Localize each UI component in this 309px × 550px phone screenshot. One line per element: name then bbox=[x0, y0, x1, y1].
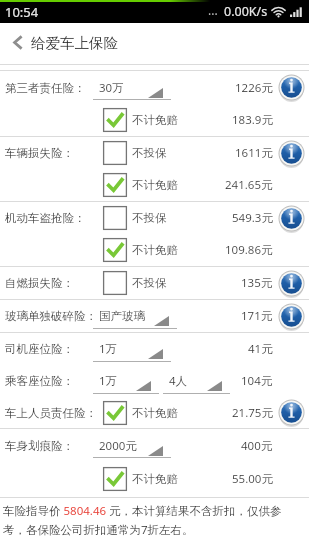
staticText: 30万 bbox=[99, 80, 124, 96]
staticText: 机动车盗抢险： bbox=[5, 211, 86, 225]
button[interactable]: 30万 bbox=[93, 71, 171, 104]
staticText: 司机座位险： bbox=[5, 342, 74, 356]
button[interactable]: Info bbox=[278, 140, 305, 167]
button[interactable]: 1万 bbox=[93, 333, 171, 365]
staticText: 给爱车上保险 bbox=[31, 34, 118, 52]
staticText: 21.75元 bbox=[232, 405, 273, 421]
button[interactable]: 不计免赔 bbox=[103, 397, 178, 428]
staticText: 自燃损失险： bbox=[5, 276, 74, 290]
staticText: 1611元 bbox=[235, 145, 273, 161]
button[interactable]: Info bbox=[278, 74, 305, 101]
staticText: 0.00K/s bbox=[224, 3, 268, 20]
button[interactable]: Back bbox=[0, 23, 31, 64]
staticText: 1万 bbox=[99, 341, 118, 357]
staticText: 不投保 bbox=[132, 276, 167, 290]
button[interactable]: 不计免赔 bbox=[103, 104, 178, 136]
staticText: 241.65元 bbox=[225, 177, 273, 193]
staticText: 不计免赔 bbox=[132, 472, 178, 486]
button[interactable]: Info bbox=[278, 205, 305, 232]
staticText: 109.86元 bbox=[225, 242, 273, 258]
staticText: 不计免赔 bbox=[132, 178, 178, 192]
staticText: 4人 bbox=[169, 373, 188, 389]
staticText: 乘客座位险： bbox=[5, 374, 74, 388]
staticText: 10:54 bbox=[5, 3, 39, 21]
staticText: 1226元 bbox=[235, 80, 273, 96]
button[interactable]: Info bbox=[278, 270, 305, 297]
button[interactable]: 不投保 bbox=[103, 137, 167, 169]
staticText: 车险指导价 5804.46 元，本计算结果不含折扣，仅供参考，各保险公司折扣通常… bbox=[3, 503, 295, 538]
button[interactable]: 不计免赔 bbox=[103, 234, 178, 266]
staticText: 不计免赔 bbox=[132, 113, 178, 127]
staticText: 车上人员责任险： bbox=[5, 406, 97, 420]
staticText: 1万 bbox=[99, 373, 118, 389]
staticText: 国产玻璃 bbox=[99, 309, 145, 323]
staticText: ... bbox=[208, 2, 218, 18]
staticText: 41元 bbox=[248, 341, 273, 357]
button[interactable]: 1万 bbox=[93, 365, 159, 397]
staticText: 2000元 bbox=[99, 438, 137, 454]
staticText: 55.00元 bbox=[232, 471, 273, 487]
staticText: 玻璃单独破碎险： bbox=[5, 309, 97, 323]
staticText: 不计免赔 bbox=[132, 406, 178, 420]
button[interactable]: Info bbox=[278, 399, 305, 426]
staticText: 车身划痕险： bbox=[5, 439, 74, 453]
staticText: 171元 bbox=[241, 308, 273, 324]
staticText: 549.3元 bbox=[232, 210, 273, 226]
staticText: 第三者责任险： bbox=[5, 81, 86, 95]
staticText: 183.9元 bbox=[232, 112, 273, 128]
button[interactable]: 2000元 bbox=[93, 429, 171, 462]
staticText: 135元 bbox=[241, 275, 273, 291]
button[interactable]: 国产玻璃 bbox=[93, 300, 177, 332]
staticText: 400元 bbox=[241, 438, 273, 454]
staticText: 不计免赔 bbox=[132, 243, 178, 257]
button[interactable]: 不投保 bbox=[103, 267, 167, 299]
button[interactable]: 4人 bbox=[163, 365, 230, 397]
button[interactable]: Info bbox=[278, 303, 305, 330]
button[interactable]: 不投保 bbox=[103, 202, 167, 234]
button[interactable]: 不计免赔 bbox=[103, 169, 178, 201]
button[interactable]: 不计免赔 bbox=[103, 462, 178, 495]
staticText: 不投保 bbox=[132, 146, 167, 160]
staticText: 104元 bbox=[241, 373, 273, 389]
staticText: 车辆损失险： bbox=[5, 146, 74, 160]
staticText: 不投保 bbox=[132, 211, 167, 225]
